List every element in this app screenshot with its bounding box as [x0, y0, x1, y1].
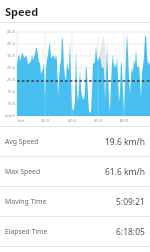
button[interactable]: Moving Time	[0, 187, 150, 216]
staticText: 60.0	[91, 118, 105, 123]
staticText: 25.0	[0, 65, 15, 70]
staticText: Avg Speed	[5, 137, 39, 146]
staticText: 80.0	[117, 118, 131, 123]
staticText: 19.6 km/h	[105, 136, 145, 148]
button[interactable]: Max Speed	[0, 157, 150, 186]
staticText: 6:18:05	[116, 226, 145, 238]
staticText: 5:09:21	[116, 196, 145, 208]
staticText: 20.0	[38, 118, 52, 123]
staticText: 30.0	[0, 53, 15, 58]
staticText: Max Speed	[5, 167, 41, 176]
staticText: km/h	[0, 113, 15, 118]
staticText: 40.0	[65, 118, 79, 123]
staticText: Moving Time	[5, 197, 47, 206]
staticText: km	[14, 118, 28, 123]
staticText: 61.6 km/h	[105, 166, 145, 178]
staticText: 10.0	[0, 101, 15, 106]
button[interactable]: Elapsed Time	[0, 217, 150, 246]
staticText: 35.0	[0, 41, 15, 46]
staticText: 20.0	[0, 77, 15, 82]
staticText: 15.0	[0, 89, 15, 94]
staticText: Elapsed Time	[5, 227, 48, 236]
button[interactable]: Avg Speed	[0, 127, 150, 156]
staticText: Speed	[5, 4, 39, 19]
staticText: 40.0	[0, 29, 15, 34]
